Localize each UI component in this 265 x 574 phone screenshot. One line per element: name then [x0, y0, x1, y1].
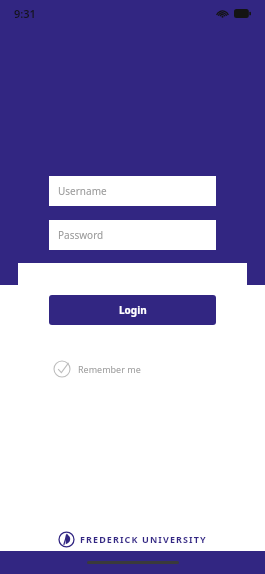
button[interactable]: Password	[49, 220, 216, 250]
staticText: Login	[119, 303, 147, 317]
staticText: Remember me	[78, 363, 141, 375]
staticText: Password	[58, 228, 104, 242]
button[interactable]: Login	[49, 295, 216, 325]
staticText: Username	[58, 184, 107, 198]
staticText: FREDERICK UNIVERSITY	[80, 533, 207, 545]
staticText: 9:31	[14, 6, 36, 21]
other: Remember me	[52, 359, 72, 379]
button[interactable]: Remember me	[52, 356, 141, 382]
button[interactable]: Username	[49, 176, 216, 206]
